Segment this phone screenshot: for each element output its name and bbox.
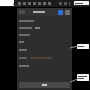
button[interactable]: Tool 2 [64, 2, 67, 5]
button[interactable]: Annotation bottom right [77, 74, 89, 81]
button[interactable] [19, 34, 70, 36]
button[interactable]: Annotation top left [0, 0, 14, 6]
button[interactable]: Toolbar action 4 [33, 2, 36, 5]
button[interactable] [19, 82, 70, 88]
button[interactable]: Tool 1 [59, 2, 62, 5]
button[interactable] [19, 49, 70, 51]
button[interactable]: Tool 3 [69, 2, 70, 5]
button[interactable] [19, 57, 70, 59]
button[interactable]: Annotation middle right [77, 44, 89, 49]
button[interactable]: Annotation top right [74, 1, 89, 5]
button[interactable]: Toolbar action 6 [43, 2, 46, 5]
button[interactable]: Toolbar action 3 [28, 2, 31, 5]
button[interactable]: Toolbar action 7 [48, 2, 51, 5]
button[interactable] [19, 65, 70, 67]
button[interactable]: Primary action [58, 10, 63, 15]
button[interactable] [19, 41, 70, 43]
button[interactable]: Toolbar action 1 [18, 2, 21, 5]
button[interactable]: Toolbar action 2 [23, 2, 26, 5]
button[interactable]: Toolbar action 5 [38, 2, 41, 5]
button[interactable] [19, 27, 70, 29]
button[interactable] [19, 20, 70, 22]
